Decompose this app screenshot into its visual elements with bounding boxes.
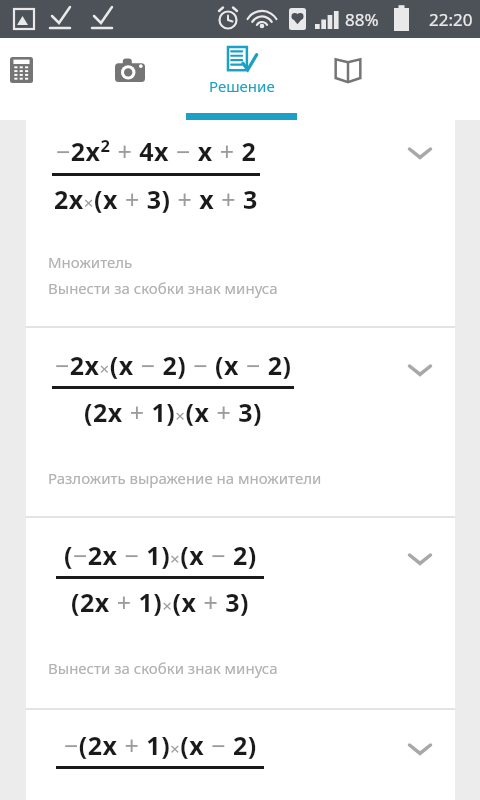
button[interactable]: −2x×(x − 2) − (x − 2) <box>26 328 455 518</box>
staticText: Решение <box>209 76 275 96</box>
staticText: (2x + 1)×(x + 3) <box>71 585 250 619</box>
staticText: Вынести за скобки знак минуса <box>48 658 278 678</box>
button[interactable]: (−2x − 1)×(x − 2) <box>26 518 455 710</box>
staticText: 2x×(x + 3) + x + 3 <box>54 182 258 216</box>
staticText: −2x2 + 4x − x + 2 <box>56 134 257 169</box>
staticText: −2x×(x − 2) − (x − 2) <box>55 348 292 382</box>
button[interactable]: Развернуть шаг <box>400 355 440 385</box>
button[interactable]: Развернуть шаг <box>400 544 440 574</box>
button[interactable]: Решение <box>186 38 297 120</box>
staticText: (−2x − 1)×(x − 2) <box>64 538 257 572</box>
button[interactable]: Развернуть шаг <box>400 734 440 764</box>
staticText: Разложить выражение на множители <box>48 468 322 488</box>
button[interactable]: −2x2 + 4x − x + 2 <box>26 120 455 328</box>
staticText: −(2x + 1)×(x − 2) <box>64 728 257 762</box>
staticText: (2x + 1)×(x + 3) <box>84 395 263 429</box>
button[interactable]: −(2x + 1)×(x − 2) <box>26 710 455 800</box>
button[interactable]: Калькулятор <box>0 38 76 120</box>
button[interactable]: Развернуть шаг <box>400 138 440 168</box>
staticText: 22:20 <box>429 8 473 31</box>
staticText: 88% <box>345 8 379 31</box>
staticText: Вынести за скобки знак минуса <box>48 278 278 298</box>
button[interactable]: Камера <box>75 38 185 120</box>
staticText: Множитель <box>48 252 133 272</box>
button[interactable]: Учебник <box>293 38 403 120</box>
